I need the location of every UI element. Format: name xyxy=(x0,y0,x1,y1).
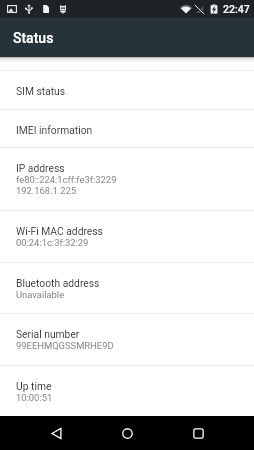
staticText: Status xyxy=(13,30,54,46)
staticText: 10:00:51 xyxy=(16,392,53,403)
staticText: IP address xyxy=(16,162,65,174)
staticText: Unavailable xyxy=(16,289,65,300)
staticText: Serial number xyxy=(16,328,80,340)
button[interactable]: SIM status xyxy=(0,71,254,109)
button[interactable]: IMEI information xyxy=(0,110,254,147)
button[interactable]: Home xyxy=(104,416,150,450)
staticText: Bluetooth address xyxy=(16,277,100,289)
button[interactable]: Recent apps xyxy=(175,416,221,450)
button[interactable]: Bluetooth address xyxy=(0,263,254,313)
staticText: 00:24:1c:3f:32:29 xyxy=(16,237,89,248)
staticText: IMEI information xyxy=(16,124,93,136)
button[interactable]: IP address xyxy=(0,148,254,210)
button[interactable]: Up time xyxy=(0,366,254,416)
button[interactable]: Serial number xyxy=(0,314,254,365)
staticText: 99EEHMQGSSMRHE9D xyxy=(16,340,114,351)
staticText: 22:47 xyxy=(223,3,250,15)
staticText: fe80::224:1cff:fe3f:3229 xyxy=(16,174,117,185)
staticText: Wi-Fi MAC address xyxy=(16,225,103,237)
staticText: Up time xyxy=(16,380,52,392)
staticText: 192.168.1.225 xyxy=(16,185,77,196)
button[interactable]: Wi-Fi MAC address xyxy=(0,211,254,262)
button[interactable]: Back xyxy=(33,416,79,450)
staticText: SIM status xyxy=(16,85,66,97)
